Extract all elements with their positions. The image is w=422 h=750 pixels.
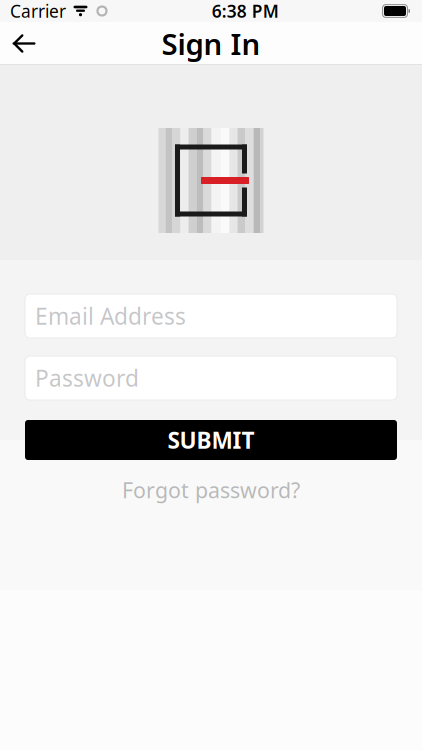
staticText: 6:38 PM bbox=[212, 0, 279, 22]
staticText: Email Address bbox=[35, 301, 186, 331]
button[interactable]: SUBMIT bbox=[25, 420, 397, 460]
button[interactable]: Forgot password? bbox=[25, 478, 397, 502]
staticText: Carrier bbox=[10, 0, 66, 22]
staticText: Password bbox=[35, 363, 139, 393]
staticText: SUBMIT bbox=[167, 425, 254, 455]
button[interactable]: Email Address bbox=[25, 294, 397, 338]
staticText: Sign In bbox=[161, 24, 260, 63]
button[interactable]: Password bbox=[25, 356, 397, 400]
button[interactable]: Back bbox=[0, 22, 48, 65]
staticText: Forgot password? bbox=[122, 476, 300, 504]
